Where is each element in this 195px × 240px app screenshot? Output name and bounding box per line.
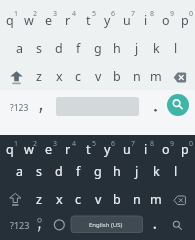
button[interactable]: 3 — [40, 0, 70, 29]
button[interactable]: q — [0, 5, 25, 35]
button[interactable]: o — [151, 5, 181, 35]
staticText: j — [135, 40, 139, 57]
button[interactable]: 2 — [20, 129, 50, 159]
button[interactable]: 9 — [157, 129, 187, 159]
button[interactable]: w — [14, 134, 44, 164]
staticText: p — [181, 12, 189, 29]
button[interactable]: o — [151, 134, 181, 164]
button[interactable]: English (US) — [71, 210, 141, 240]
button[interactable]: ?123 — [0, 93, 39, 123]
button[interactable]: i — [131, 5, 161, 35]
staticText: z — [36, 68, 42, 85]
button[interactable]: t — [73, 134, 103, 164]
staticText: j — [135, 163, 139, 180]
button[interactable]: l — [161, 33, 191, 63]
button[interactable]: b — [102, 184, 132, 214]
button[interactable]: 1 — [1, 0, 31, 29]
button[interactable]: 4 — [59, 129, 89, 159]
button[interactable]: g — [83, 156, 113, 186]
button[interactable]: y — [92, 5, 122, 35]
button[interactable]: k — [141, 156, 171, 186]
button[interactable]: 5 — [79, 129, 109, 159]
staticText: h — [113, 163, 121, 180]
button[interactable]: w — [14, 5, 44, 35]
button[interactable]: d — [44, 33, 74, 63]
button[interactable]: n — [122, 61, 152, 91]
button[interactable]: c — [63, 61, 93, 91]
button[interactable]: v — [83, 184, 113, 214]
button[interactable]: n — [122, 184, 152, 214]
button[interactable]: t — [73, 5, 103, 35]
button[interactable]: 4 — [59, 0, 89, 29]
button[interactable]: 0 — [176, 0, 195, 29]
button[interactable]: d — [44, 156, 74, 186]
button[interactable]: 2 — [20, 0, 50, 29]
staticText: y — [104, 141, 111, 158]
button[interactable]: p — [170, 5, 195, 35]
button[interactable]: 9 — [157, 0, 187, 29]
button[interactable]: z — [24, 61, 54, 91]
staticText: 6 — [111, 139, 116, 149]
button[interactable]: m — [141, 184, 171, 214]
button[interactable]: z — [24, 184, 54, 214]
button[interactable]: k — [141, 33, 171, 63]
button[interactable]: e — [34, 134, 64, 164]
button[interactable]: q — [0, 134, 25, 164]
button[interactable]: 1 — [1, 129, 31, 159]
button[interactable]: 6 — [98, 129, 128, 159]
staticText: 3 — [53, 9, 58, 19]
button[interactable]: a — [5, 33, 35, 63]
staticText: x — [56, 68, 63, 85]
button[interactable]: l — [161, 156, 191, 186]
button[interactable] — [71, 216, 143, 233]
button[interactable]: 0 — [176, 129, 195, 159]
button[interactable]: 5 — [79, 0, 109, 29]
staticText: w — [24, 12, 34, 29]
staticText: m — [150, 191, 162, 208]
button[interactable]: p — [170, 134, 195, 164]
button[interactable]: r — [53, 134, 83, 164]
button[interactable]: j — [122, 156, 152, 186]
staticText: 4 — [72, 139, 77, 149]
button[interactable] — [0, 135, 195, 240]
button[interactable]: u — [112, 134, 142, 164]
button[interactable]: b — [102, 61, 132, 91]
button[interactable]: m — [141, 61, 171, 91]
button[interactable]: 3 — [40, 129, 70, 159]
button[interactable]: c — [63, 184, 93, 214]
button[interactable]: i — [131, 134, 161, 164]
staticText: w — [24, 141, 34, 158]
button[interactable]: x — [44, 61, 74, 91]
staticText: l — [174, 163, 178, 180]
button[interactable]: u — [112, 5, 142, 35]
button[interactable]: s — [24, 33, 54, 63]
button[interactable]: a — [5, 156, 35, 186]
button[interactable]: 7 — [118, 129, 148, 159]
button[interactable]: e — [34, 5, 64, 35]
button[interactable]: x — [44, 184, 74, 214]
button[interactable]: g — [83, 33, 113, 63]
button[interactable]: 8 — [137, 0, 167, 29]
button[interactable]: h — [102, 156, 132, 186]
button[interactable]: 6 — [98, 0, 128, 29]
button[interactable]: 7 — [118, 0, 148, 29]
button[interactable]: y — [92, 134, 122, 164]
staticText: d — [55, 40, 63, 57]
button[interactable]: h — [102, 33, 132, 63]
button[interactable]: v — [83, 61, 113, 91]
button[interactable]: j — [122, 33, 152, 63]
button[interactable]: s — [24, 156, 54, 186]
staticText: c — [75, 191, 82, 208]
button[interactable]: 8 — [137, 129, 167, 159]
staticText: b — [113, 68, 121, 85]
staticText: b — [113, 191, 121, 208]
staticText: 5 — [92, 9, 97, 19]
button[interactable]: f — [63, 33, 93, 63]
button[interactable]: ?123 — [0, 210, 40, 240]
button[interactable]: r — [53, 5, 83, 35]
staticText: t — [86, 12, 91, 29]
button[interactable] — [167, 94, 189, 116]
button[interactable]: f — [63, 156, 93, 186]
staticText: o — [162, 141, 170, 158]
